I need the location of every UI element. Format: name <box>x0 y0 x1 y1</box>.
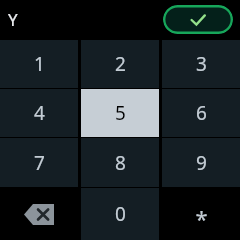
button[interactable]: 0 <box>81 188 159 240</box>
button[interactable]: 9 <box>162 138 240 187</box>
staticText: 1 <box>34 51 45 77</box>
staticText: * <box>195 203 208 233</box>
staticText: 0 <box>115 201 126 227</box>
staticText: 5 <box>115 100 126 126</box>
button[interactable]: 6 <box>162 89 240 137</box>
button[interactable]: 5 <box>81 89 159 137</box>
staticText: 2 <box>115 51 126 77</box>
button[interactable]: * <box>162 188 240 240</box>
button[interactable]: 7 <box>0 138 78 187</box>
staticText: 4 <box>34 100 45 126</box>
staticText: 6 <box>196 100 207 126</box>
button[interactable]: 8 <box>81 138 159 187</box>
button[interactable]: 4 <box>0 89 78 137</box>
button[interactable]: 3 <box>162 40 240 88</box>
staticText: 8 <box>115 150 126 176</box>
staticText: 3 <box>196 51 207 77</box>
staticText: Y <box>8 8 18 31</box>
staticText: 7 <box>34 150 45 176</box>
button[interactable]: 2 <box>81 40 159 88</box>
button[interactable]: Confirm <box>163 5 233 34</box>
button[interactable]: 1 <box>0 40 78 88</box>
button[interactable]: Backspace <box>0 188 78 240</box>
staticText: 9 <box>196 150 207 176</box>
